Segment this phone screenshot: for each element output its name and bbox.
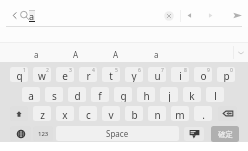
button[interactable]: l [206,87,224,102]
staticText: b [131,108,138,121]
button[interactable]: . [194,106,212,121]
button[interactable]: t [102,67,120,82]
staticText: v [108,108,114,121]
button[interactable]: d [68,87,86,102]
button[interactable]: p [217,67,235,82]
staticText: n [154,108,161,121]
staticText: 確定 [218,130,233,139]
staticText: 123 [38,130,49,138]
button[interactable]: v [102,106,120,121]
button[interactable]: q [10,67,28,82]
button[interactable]: Send [231,9,244,22]
staticText: 0 [230,67,233,74]
staticText: a [28,89,34,102]
button[interactable]: j [160,87,178,102]
button[interactable]: Backspace [218,106,237,121]
button[interactable]: u [148,67,166,82]
button[interactable]: f [91,87,109,102]
staticText: m [175,108,185,121]
staticText: 9 [207,67,210,74]
staticText: z [40,108,45,121]
button[interactable]: a [29,10,35,22]
button[interactable]: a [136,43,176,62]
button[interactable]: Expand suggestions [234,43,248,62]
staticText: A [113,49,119,60]
staticText: k [189,89,195,102]
staticText: a [29,10,35,22]
staticText: s [52,89,57,102]
staticText: 7 [161,67,164,74]
button[interactable]: s [45,87,63,102]
button[interactable]: g [114,87,132,102]
staticText: 8 [184,67,187,74]
button[interactable]: b [125,106,143,121]
staticText: r [86,69,91,82]
staticText: Space [106,128,129,139]
staticText: j [168,89,171,102]
staticText: t [109,69,113,82]
button[interactable]: Next [204,9,217,22]
staticText: y [131,69,137,82]
staticText: q [16,69,23,82]
button[interactable]: o [194,67,212,82]
button[interactable]: i [171,67,189,82]
button[interactable]: Search [18,9,31,22]
button[interactable]: Clear [161,8,177,24]
staticText: 1 [23,67,26,74]
staticText: x [62,108,68,121]
button[interactable]: a [22,87,40,102]
staticText: 2 [46,67,49,74]
staticText: g [120,89,127,102]
staticText: d [74,89,81,102]
button[interactable]: x [56,106,74,121]
staticText: o [200,69,207,82]
staticText: e [62,69,68,82]
button[interactable]: Space [56,126,179,141]
button[interactable]: z [33,106,51,121]
button[interactable]: r [79,67,97,82]
staticText: 3 [69,67,72,74]
button[interactable]: e [56,67,74,82]
staticText: i [179,69,182,82]
staticText: p [223,69,230,82]
button[interactable]: Previous [183,9,196,22]
staticText: A [73,49,79,60]
button[interactable]: Shift [10,106,28,121]
button[interactable]: m [171,106,189,121]
button[interactable]: c [79,106,97,121]
staticText: . [202,108,205,121]
button[interactable]: a [16,43,56,62]
staticText: w [38,69,46,82]
button[interactable]: Numbers [33,126,53,141]
button[interactable]: Change keyboard [10,126,31,141]
staticText: u [154,69,161,82]
button[interactable]: h [137,87,155,102]
staticText: 5 [115,67,118,74]
staticText: a [154,49,159,60]
staticText: l [214,89,217,102]
button[interactable]: Back [8,9,21,22]
staticText: a [34,49,39,60]
staticText: 6 [138,67,141,74]
button[interactable]: Emoji [184,127,204,141]
staticText: c [86,108,91,121]
button[interactable]: A [96,43,136,62]
staticText: h [143,89,150,102]
staticText: 4 [92,67,95,74]
button[interactable]: n [148,106,166,121]
button[interactable]: A [56,43,96,62]
button[interactable]: w [33,67,51,82]
button[interactable]: y [125,67,143,82]
button[interactable]: 確定 [211,126,239,142]
button[interactable]: k [183,87,201,102]
staticText: f [98,89,102,102]
